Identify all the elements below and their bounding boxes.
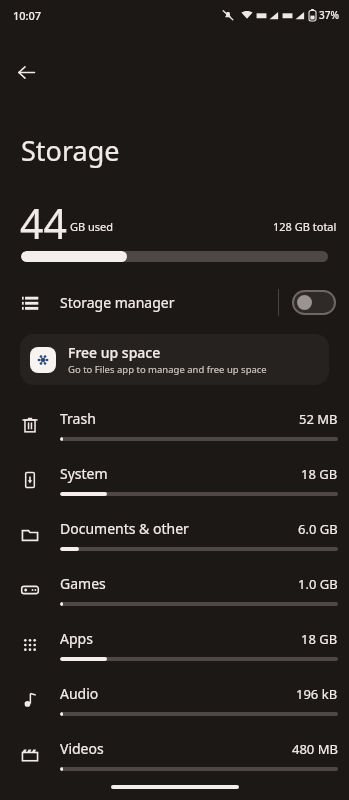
button[interactable]: Videos [0,727,349,782]
staticText: 10:07 [13,8,42,23]
staticText: Trash [60,409,96,428]
staticText: 480 MB [292,740,338,758]
staticText: Free up space [68,343,161,362]
button[interactable]: Trash [0,397,349,452]
staticText: Games [60,574,106,593]
button[interactable]: Back [8,54,44,90]
staticText: 18 GB [301,465,338,483]
staticText: 1.0 GB [298,575,338,593]
staticText: System [60,464,108,483]
button[interactable]: Storage manager toggle [293,291,335,314]
staticText: 18 GB [301,630,338,648]
staticText: Go to Files app to manage and free up sp… [68,363,267,376]
button[interactable]: Free up space [20,334,329,385]
staticText: 37% [319,8,339,22]
button[interactable]: Games [0,562,349,617]
staticText: Storage manager [60,293,175,312]
staticText: Storage [21,132,120,169]
staticText: 44 [20,195,67,239]
button[interactable]: Audio [0,672,349,727]
staticText: 52 MB [299,410,338,428]
button[interactable]: Storage manager [0,280,349,324]
staticText: Apps [60,629,93,648]
button[interactable]: Documents & other [0,507,349,562]
button[interactable]: Apps [0,617,349,672]
staticText: Documents & other [60,519,189,538]
staticText: GB used [70,219,114,234]
staticText: 128 GB total [273,219,337,234]
staticText: Audio [60,684,99,703]
button[interactable]: System [0,452,349,507]
staticText: Videos [60,739,104,758]
staticText: 6.0 GB [298,520,338,538]
staticText: 196 kB [296,685,338,703]
